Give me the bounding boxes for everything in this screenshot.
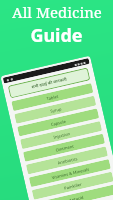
button[interactable]: सभी दवाई की जानकारी <box>8 67 90 98</box>
button[interactable]: Syrup <box>14 96 96 124</box>
button[interactable]: Capsule <box>17 108 99 136</box>
staticText: Capsule <box>50 119 67 127</box>
staticText: All Medicine <box>12 2 102 22</box>
staticText: Tablet <box>46 94 59 101</box>
staticText: Vitamins & Minerals <box>51 167 90 180</box>
button[interactable]: Antibiotics <box>26 146 108 174</box>
staticText: Painkiller <box>64 182 82 191</box>
staticText: Guide <box>30 23 83 48</box>
button[interactable]: Antacid <box>35 184 113 200</box>
staticText: Injection <box>53 131 71 140</box>
button[interactable]: Vitamins & Minerals <box>29 159 111 187</box>
staticText: सभी दवाई की जानकारी <box>31 76 67 89</box>
button[interactable]: Medicine list preview <box>0 56 113 200</box>
staticText: Antibiotics <box>57 156 78 166</box>
staticText: Syrup <box>50 106 62 114</box>
button[interactable]: Ointment <box>23 134 105 162</box>
button[interactable]: Painkiller <box>32 172 113 200</box>
staticText: Antacid <box>68 195 84 200</box>
button[interactable]: Tablet <box>11 83 93 111</box>
staticText: Ointment <box>55 144 74 153</box>
button[interactable]: Injection <box>20 121 102 149</box>
